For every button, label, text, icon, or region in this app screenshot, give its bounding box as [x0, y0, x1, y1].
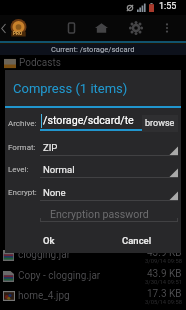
staticText: 3/30/14 09:51 — [145, 279, 182, 286]
staticText: Level: — [8, 165, 29, 174]
staticText: Ok — [43, 235, 55, 246]
staticText: Format: — [8, 143, 36, 152]
button[interactable]: Home — [95, 22, 108, 34]
staticText: Copy - clogging.jar — [18, 270, 101, 282]
staticText: None — [43, 187, 66, 198]
button[interactable]: None — [40, 182, 178, 201]
staticText: Encrypt: — [8, 188, 37, 197]
staticText: PRO — [13, 31, 23, 36]
button[interactable]: Settings — [130, 22, 142, 34]
staticText: 3/09/14 09:58 — [145, 258, 182, 265]
button[interactable]: Normal — [40, 159, 178, 178]
button[interactable]: Encryption password — [40, 205, 178, 222]
staticText: Cancel — [122, 235, 152, 246]
staticText: /storage/sdcard/te — [43, 114, 134, 127]
staticText: Podcasts — [19, 57, 61, 69]
button[interactable]: More options — [164, 22, 170, 34]
staticText: Encryption password — [50, 208, 149, 220]
staticText: browse — [145, 118, 175, 129]
staticText: ZIP — [43, 142, 58, 153]
button[interactable]: Cancel — [93, 228, 181, 252]
button[interactable]: Ok — [5, 228, 93, 252]
button[interactable]: Copy - clogging.jar — [0, 268, 186, 289]
staticText: 17.3 KB — [147, 288, 182, 300]
button[interactable]: Podcasts — [0, 55, 186, 72]
button[interactable]: /storage/sdcard/te — [40, 111, 143, 131]
button[interactable]: ZIP — [40, 137, 178, 156]
staticText: 1:55 — [159, 1, 177, 12]
staticText: Archive: — [8, 119, 37, 128]
button[interactable]: Navigate up — [1, 24, 6, 33]
button[interactable]: home_4.jpg — [0, 288, 186, 309]
staticText: Current: /storage/sdcard — [51, 45, 135, 54]
button[interactable]: Storage device — [66, 22, 77, 34]
staticText: 43.9 KB — [147, 247, 182, 259]
button[interactable]: clogging.jar — [0, 247, 186, 268]
staticText: Compress (1 items) — [13, 81, 128, 96]
staticText: 3/05/14 09:58 — [145, 299, 182, 306]
staticText: Normal — [43, 164, 75, 175]
staticText: clogging.jar — [18, 249, 71, 261]
staticText: home_4.jpg — [18, 290, 70, 302]
staticText: 43.9 KB — [147, 268, 182, 280]
button[interactable]: browse — [142, 115, 178, 132]
button[interactable]: App home — [9, 19, 28, 38]
